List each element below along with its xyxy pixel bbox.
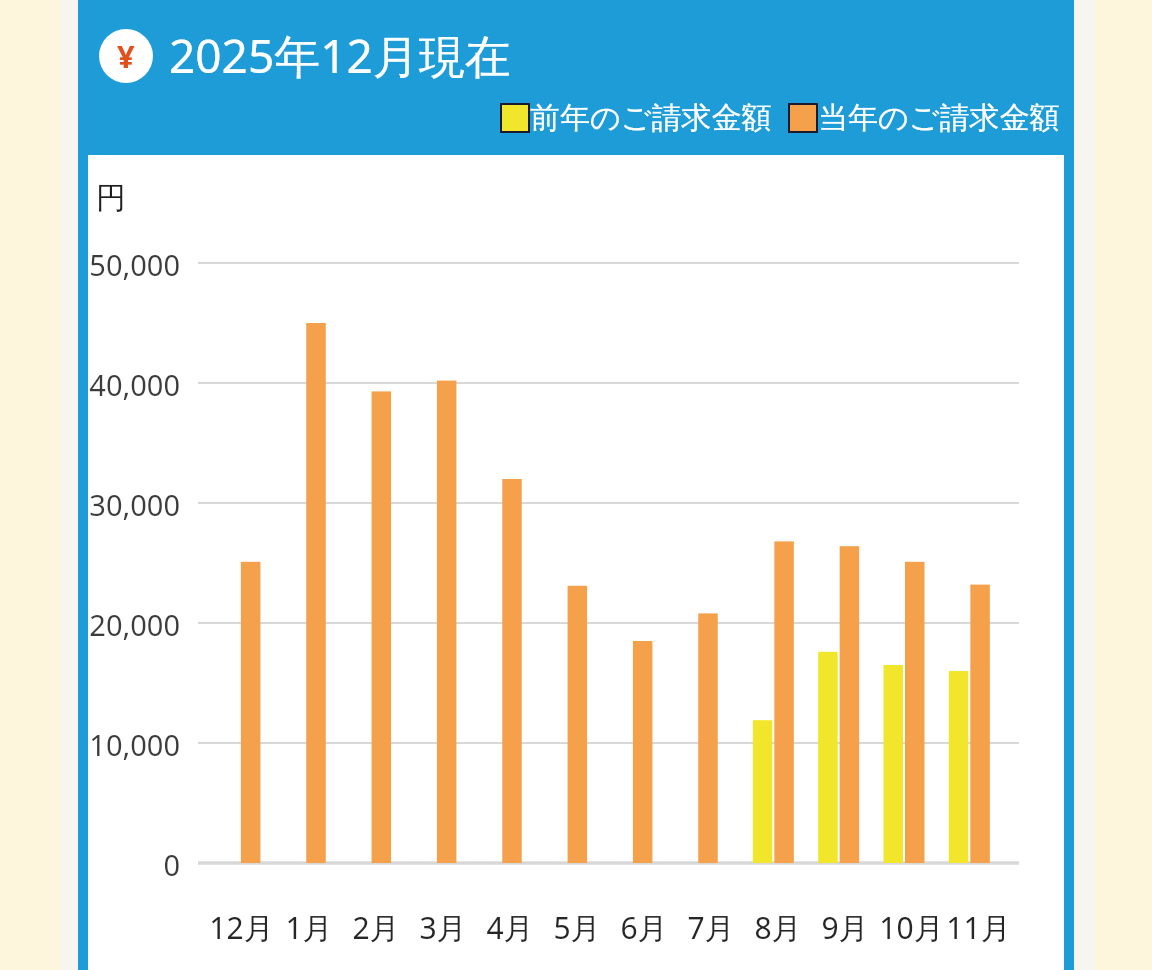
staticText: 10,000 bbox=[88, 725, 180, 764]
staticText: 円 bbox=[96, 179, 126, 217]
staticText: 50,000 bbox=[88, 245, 180, 284]
staticText: 9月 bbox=[821, 907, 869, 948]
staticText: 8月 bbox=[754, 907, 802, 948]
staticText: 11月 bbox=[946, 907, 1011, 948]
button[interactable]: 前年のご請求金額 bbox=[500, 99, 772, 137]
button[interactable]: Yen bbox=[78, 24, 1074, 87]
staticText: 2月 bbox=[352, 907, 400, 948]
button[interactable]: 当年のご請求金額 bbox=[788, 99, 1060, 137]
staticText: 30,000 bbox=[88, 485, 180, 524]
staticText: 前年のご請求金額 bbox=[530, 99, 772, 137]
staticText: ¥ bbox=[117, 35, 135, 77]
staticText: 6月 bbox=[620, 907, 668, 948]
staticText: 7月 bbox=[687, 907, 735, 948]
staticText: 2025年12月現在 bbox=[169, 24, 511, 87]
staticText: 3月 bbox=[419, 907, 467, 948]
staticText: 1月 bbox=[285, 907, 333, 948]
staticText: 4月 bbox=[486, 907, 534, 948]
staticText: 10月 bbox=[879, 907, 944, 948]
other: Yen bbox=[99, 29, 153, 83]
staticText: 当年のご請求金額 bbox=[818, 99, 1060, 137]
staticText: 0 bbox=[88, 845, 180, 884]
staticText: 12月 bbox=[209, 907, 274, 948]
staticText: 40,000 bbox=[88, 365, 180, 404]
staticText: 20,000 bbox=[88, 605, 180, 644]
staticText: 5月 bbox=[553, 907, 601, 948]
